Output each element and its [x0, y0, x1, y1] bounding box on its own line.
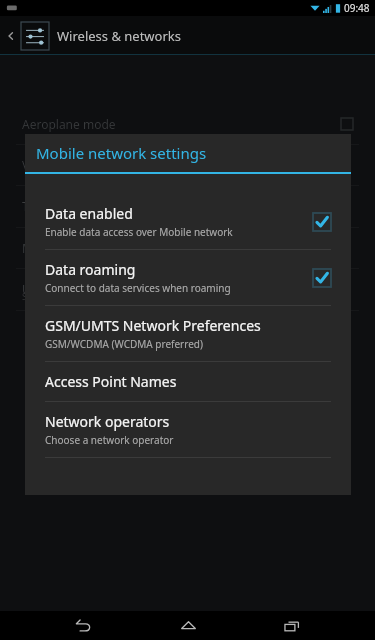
button[interactable]: Recent apps — [270, 611, 314, 640]
staticText: GSM/WCDMA (WCDMA preferred) — [45, 337, 203, 351]
staticText: Use only 2G networks — [22, 281, 353, 297]
staticText: Choose a network operator — [45, 433, 174, 447]
staticText: Connect to data services when roaming — [45, 281, 231, 295]
staticText: VPN — [22, 157, 353, 173]
staticText: Mobile networks — [22, 240, 353, 256]
button[interactable]: Network operators — [25, 402, 351, 457]
button[interactable]: GSM/UMTS Network Preferences — [25, 306, 351, 361]
button[interactable]: Home — [166, 611, 210, 640]
staticText: Tethering & portable hotspot — [22, 198, 353, 214]
button[interactable]: Back — [61, 611, 105, 640]
other: Back — [5, 30, 17, 42]
button[interactable]: Toggle Data roaming — [313, 269, 331, 287]
staticText: Data enabled — [45, 204, 133, 223]
button[interactable]: Data enabled — [25, 194, 351, 249]
staticText: 09:48 — [344, 1, 370, 15]
staticText: GSM/UMTS Network Preferences — [45, 316, 261, 335]
staticText: Enable data access over Mobile network — [45, 225, 233, 239]
staticText: Data roaming — [45, 260, 136, 279]
button[interactable]: Access Point Names — [25, 362, 351, 401]
staticText: Wireless & networks — [57, 27, 181, 45]
button[interactable]: Back — [0, 16, 375, 55]
other: Wireless and networks — [21, 22, 49, 50]
button[interactable]: Data roaming — [25, 250, 351, 305]
staticText: Mobile network settings — [36, 143, 207, 163]
staticText: Access Point Names — [45, 372, 177, 391]
staticText: Network operators — [45, 412, 170, 431]
staticText: Aeroplane mode — [22, 116, 341, 132]
button[interactable]: Toggle Data enabled — [313, 213, 331, 231]
staticText: Save battery — [22, 290, 353, 302]
